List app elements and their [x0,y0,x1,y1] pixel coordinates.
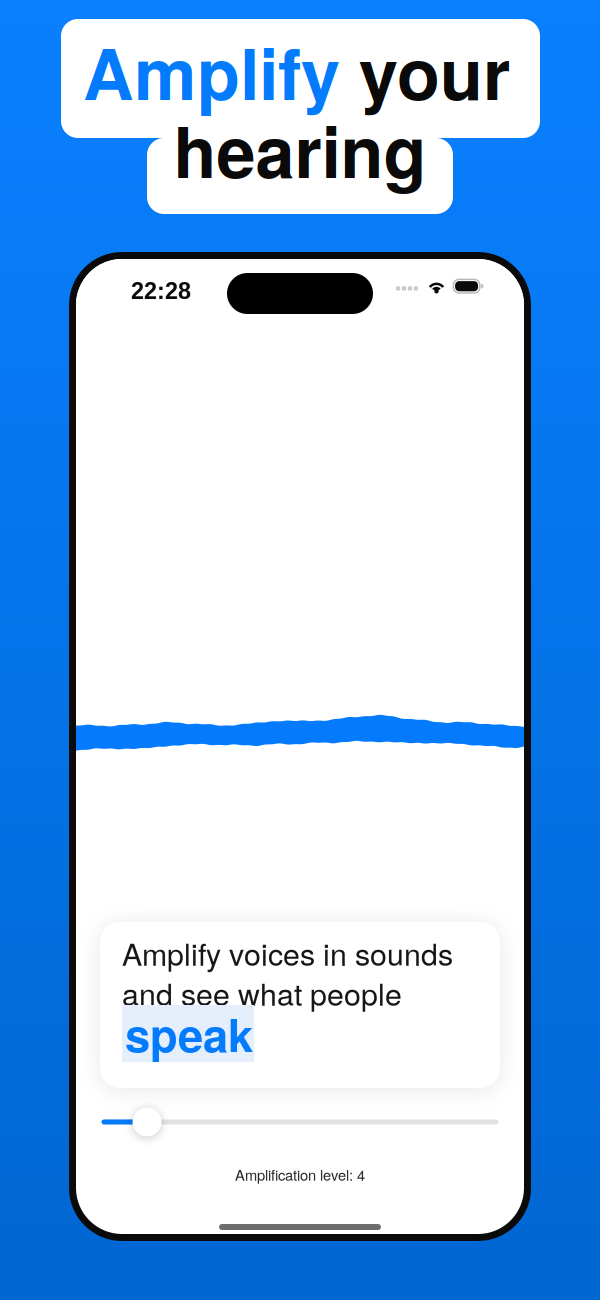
button[interactable]: Amplify voices in sounds [100,922,500,1088]
staticText: and see what people [122,971,402,1014]
staticText: Amplification level: 4 [235,1164,365,1185]
button[interactable]: Amplification level [101,1106,498,1138]
staticText: Amplify [83,21,340,121]
staticText: Amplify voices in sounds [122,931,453,974]
staticText: hearing [173,99,426,199]
staticText: your [340,21,510,121]
staticText: speak [125,1001,253,1066]
staticText: 22:28 [131,278,191,304]
